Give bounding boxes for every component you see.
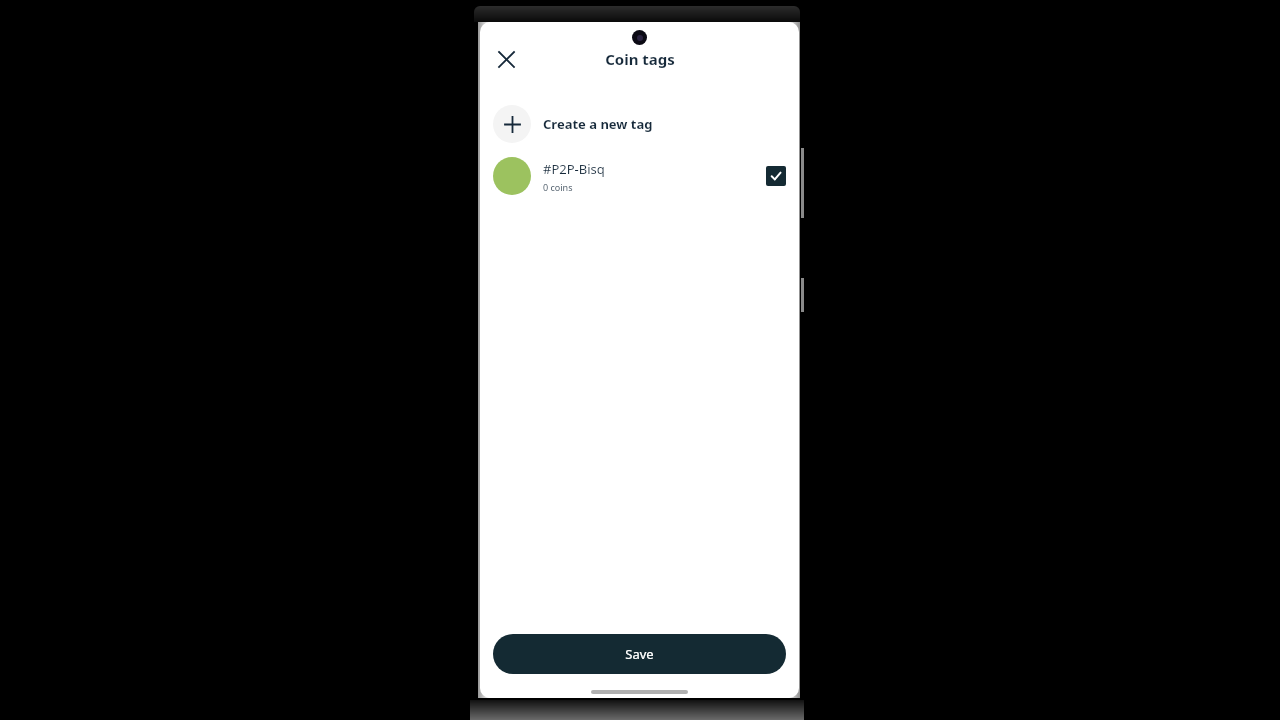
staticText: 0 coins bbox=[543, 181, 573, 193]
button[interactable]: Create a new tag bbox=[480, 100, 799, 148]
button[interactable]: Close bbox=[486, 39, 526, 79]
button[interactable]: #P2P-Bisq bbox=[480, 152, 799, 200]
button[interactable]: Save bbox=[493, 634, 786, 674]
button[interactable]: Toggle tag #P2P-Bisq bbox=[766, 166, 786, 186]
staticText: Create a new tag bbox=[543, 115, 653, 133]
staticText: Save bbox=[625, 645, 654, 663]
staticText: Coin tags bbox=[605, 49, 675, 69]
staticText: #P2P-Bisq bbox=[543, 160, 605, 178]
